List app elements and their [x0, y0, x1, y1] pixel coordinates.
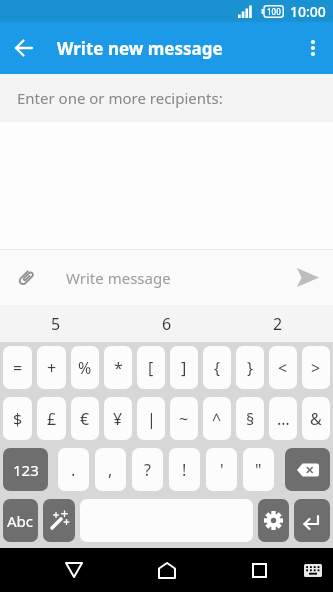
staticText: Write message [66, 268, 171, 288]
button[interactable] [283, 250, 333, 305]
button[interactable]: 2 [222, 305, 333, 342]
button[interactable]: * [104, 346, 132, 389]
button[interactable]: £ [37, 397, 66, 440]
button[interactable]: ' [206, 448, 237, 491]
button[interactable] [0, 22, 48, 74]
staticText: Write new message [57, 37, 223, 60]
staticText: Enter one or more recipients: [17, 88, 223, 108]
button[interactable]: % [71, 346, 99, 389]
staticText: ^ [212, 408, 222, 430]
staticText: § [246, 408, 255, 430]
button[interactable]: . [58, 448, 89, 491]
button[interactable]: ] [170, 346, 198, 389]
staticText: [ [148, 357, 154, 379]
button[interactable]: > [302, 346, 330, 389]
button[interactable]: , [95, 448, 126, 491]
staticText: ¥ [113, 408, 123, 430]
button[interactable] [258, 499, 289, 542]
staticText: £ [47, 408, 57, 430]
staticText: ' [220, 459, 224, 481]
staticText: & [310, 408, 322, 430]
button[interactable] [144, 548, 189, 592]
button[interactable]: $ [3, 397, 32, 440]
button[interactable] [51, 548, 96, 592]
staticText: < [278, 357, 288, 379]
staticText: | [147, 408, 156, 430]
staticText: € [80, 408, 90, 430]
staticText: … [277, 408, 290, 430]
button[interactable]: ! [169, 448, 200, 491]
button[interactable]: ^ [203, 397, 231, 440]
button[interactable] [285, 448, 330, 491]
staticText: Abc [7, 511, 34, 531]
button[interactable]: ? [132, 448, 163, 491]
staticText: ] [181, 357, 187, 379]
button[interactable]: | [137, 397, 165, 440]
staticText: 6 [162, 313, 172, 335]
staticText: { [214, 357, 221, 379]
staticText: 10:00 [290, 2, 326, 21]
staticText: 5 [51, 313, 61, 335]
staticText: ! [182, 459, 187, 481]
button[interactable]: ~ [170, 397, 198, 440]
staticText: > [311, 357, 321, 379]
button[interactable]: " [243, 448, 274, 491]
staticText: , [108, 459, 113, 481]
button[interactable]: … [269, 397, 297, 440]
button[interactable]: 123 [3, 448, 48, 491]
staticText: % [78, 357, 92, 379]
staticText: 2 [273, 313, 283, 335]
button[interactable]: [ [137, 346, 165, 389]
staticText: 123 [13, 460, 39, 480]
button[interactable]: } [236, 346, 264, 389]
button[interactable]: 5 [0, 305, 111, 342]
button[interactable] [43, 499, 75, 542]
staticText: . [71, 459, 76, 481]
staticText: " [255, 459, 262, 481]
button[interactable]: + [37, 346, 66, 389]
staticText: * [114, 357, 123, 379]
staticText: $ [13, 408, 23, 430]
button[interactable] [294, 499, 330, 542]
button[interactable]: Abc [3, 499, 38, 542]
button[interactable]: & [302, 397, 330, 440]
staticText: 100 [267, 6, 281, 17]
staticText: ? [144, 459, 151, 481]
button[interactable]: § [236, 397, 264, 440]
button[interactable]: = [3, 346, 32, 389]
button[interactable]: 6 [111, 305, 222, 342]
staticText: ~ [179, 408, 189, 430]
button[interactable] [296, 548, 329, 592]
staticText: } [247, 357, 254, 379]
button[interactable] [237, 548, 282, 592]
button[interactable]: ¥ [104, 397, 132, 440]
staticText: + [47, 357, 57, 379]
button[interactable] [293, 22, 333, 74]
button[interactable]: { [203, 346, 231, 389]
button[interactable]: Write message [0, 250, 333, 305]
staticText: = [13, 357, 23, 379]
button[interactable]: Enter one or more recipients: [0, 74, 333, 122]
button[interactable]: < [269, 346, 297, 389]
button[interactable]: € [71, 397, 99, 440]
